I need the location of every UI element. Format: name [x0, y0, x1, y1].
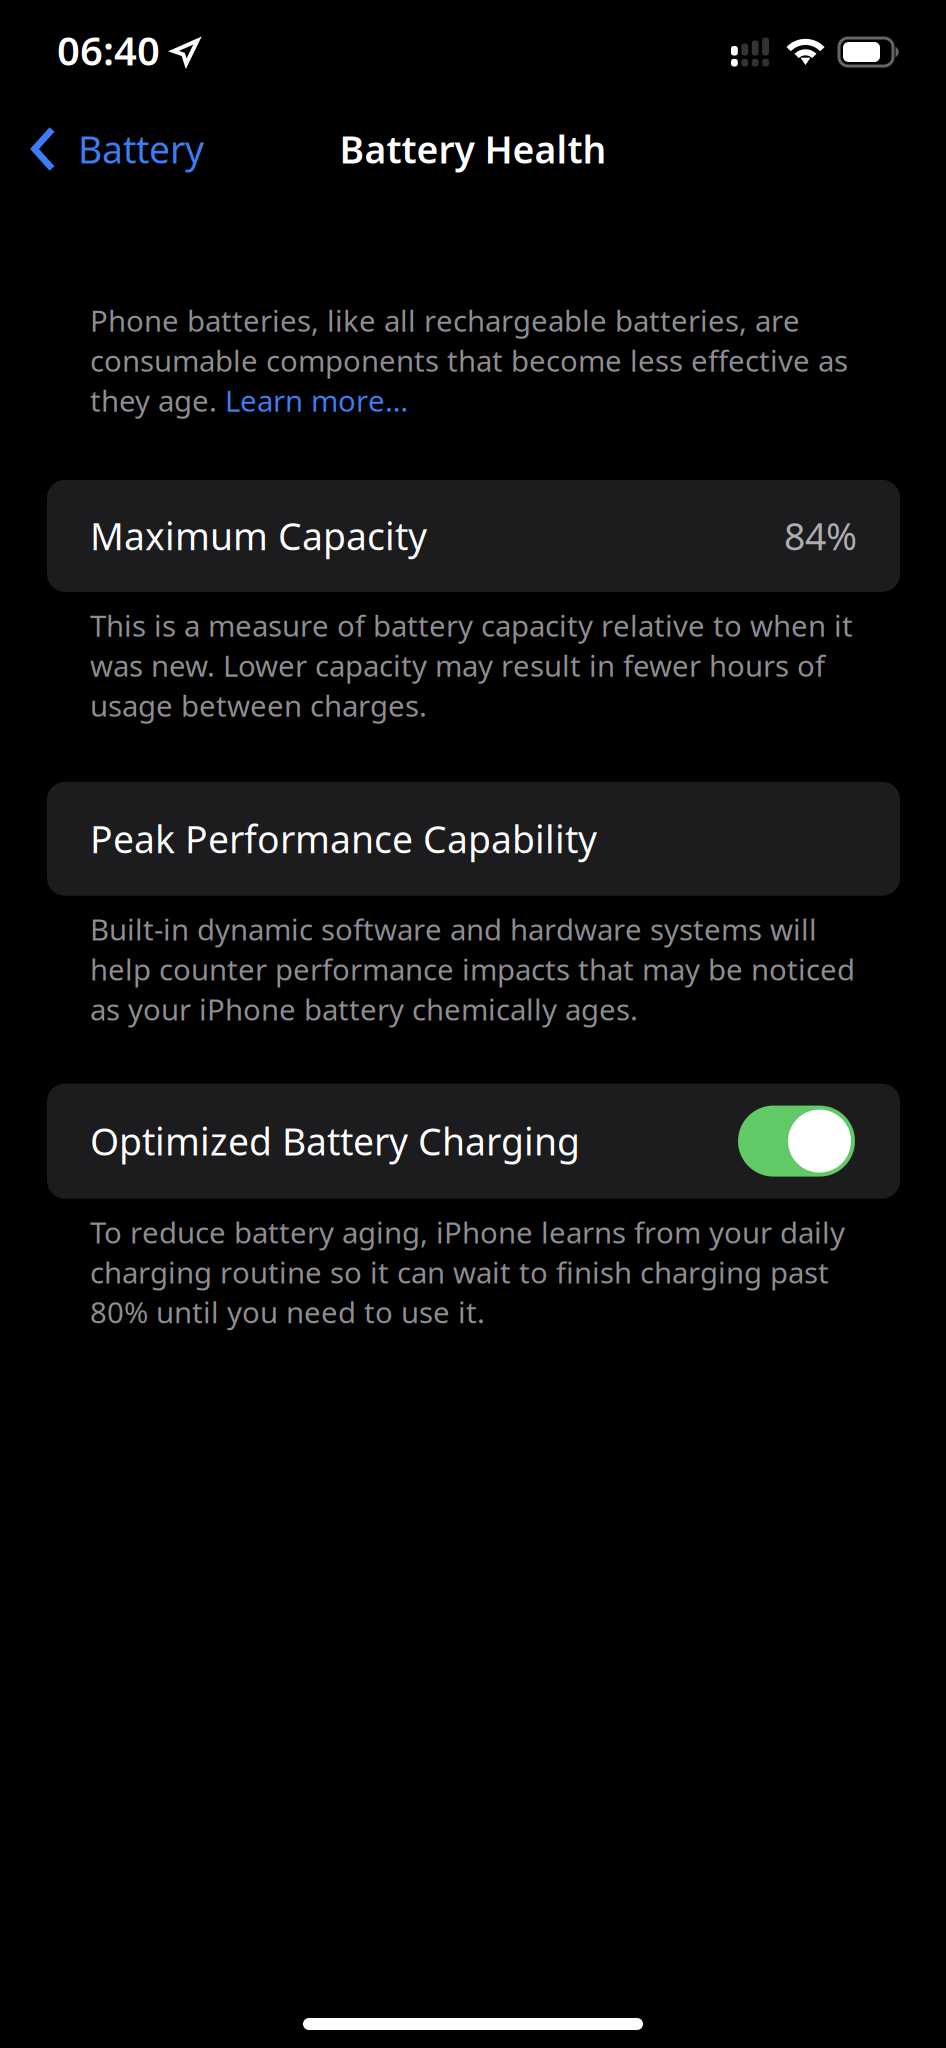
staticText: Maximum Capacity	[90, 511, 427, 561]
staticText: Phone batteries, like all rechargeable b…	[90, 301, 800, 340]
staticText: 06:40	[57, 23, 160, 76]
staticText: charging routine so it can wait to finis…	[90, 1252, 829, 1291]
button[interactable]: Learn more…	[225, 381, 408, 420]
staticText: was new. Lower capacity may result in fe…	[90, 646, 825, 685]
staticText: 84%	[784, 511, 857, 561]
staticText: help counter performance impacts that ma…	[90, 950, 855, 989]
staticText: Peak Performance Capability	[90, 814, 597, 863]
staticText: 80% until you need to use it.	[90, 1292, 485, 1331]
staticText: consumable components that become less e…	[90, 341, 848, 380]
staticText: usage between charges.	[90, 686, 427, 725]
staticText: as your iPhone battery chemically ages.	[90, 990, 638, 1029]
button[interactable]: Maximum Capacity	[47, 480, 900, 592]
staticText: Optimized Battery Charging	[90, 1116, 580, 1166]
button[interactable]: Battery	[0, 106, 224, 192]
staticText: Learn more…	[225, 381, 408, 420]
button[interactable]: Optimized Battery Charging	[47, 1084, 900, 1199]
button[interactable]: Optimized Battery Charging, on	[738, 1106, 857, 1177]
staticText: Battery	[78, 124, 204, 174]
staticText: Built-in dynamic software and hardware s…	[90, 910, 817, 949]
staticText: they age.	[90, 381, 225, 420]
staticText: This is a measure of battery capacity re…	[90, 606, 853, 645]
button[interactable]: Peak Performance Capability	[47, 782, 900, 896]
staticText: To reduce battery aging, iPhone learns f…	[90, 1213, 845, 1252]
staticText: Battery Health	[339, 124, 606, 174]
